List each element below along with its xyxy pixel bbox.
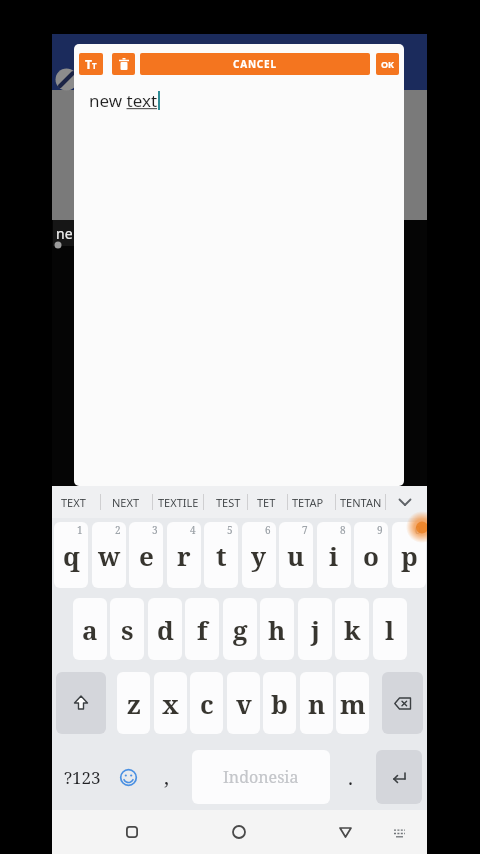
staticText: g [233,612,248,647]
button[interactable] [331,820,359,844]
button[interactable]: TETAP [278,486,338,518]
staticText: j [311,612,320,647]
button[interactable]: m [336,672,369,734]
button[interactable] [388,486,422,518]
button[interactable]: h [260,598,294,660]
button[interactable] [118,820,146,844]
staticText: new text [89,89,158,112]
staticText: 5 [227,523,233,537]
staticText: r [177,538,191,573]
staticText: TEXT [61,495,86,510]
staticText: 0 [415,523,421,537]
button[interactable]: i [317,522,351,588]
staticText: 9 [377,523,383,537]
staticText: TEST [216,495,241,510]
staticText: . [348,764,353,791]
button[interactable]: j [298,598,332,660]
button[interactable]: . [336,750,364,804]
staticText: CANCEL [233,57,277,71]
button[interactable]: t [204,522,238,588]
button[interactable] [386,822,412,844]
button[interactable]: x [154,672,187,734]
staticText: i [329,538,339,573]
staticText: n [308,686,326,721]
staticText: 2 [115,523,121,537]
staticText: t [216,538,227,573]
button[interactable] [112,750,144,804]
staticText: TETAP [292,495,324,510]
staticText: ?123 [64,766,101,789]
button[interactable]: w [92,522,126,588]
staticText: Indonesia [223,766,299,788]
button[interactable]: TEST [198,486,258,518]
staticText: 8 [340,523,346,537]
staticText: e [139,538,154,573]
button[interactable]: a [73,598,107,660]
staticText: s [121,612,134,647]
button[interactable]: r [167,522,201,588]
staticText: TENTAN [340,495,382,510]
button[interactable]: k [335,598,369,660]
button[interactable] [225,820,253,844]
staticText: m [340,686,366,721]
button[interactable]: OK [376,53,399,75]
button[interactable]: CANCEL [140,53,370,75]
button[interactable]: v [227,672,260,734]
staticText: 7 [302,523,308,537]
button[interactable]: l [373,598,407,660]
button[interactable]: TENTAN [331,486,391,518]
staticText: TET [257,495,276,510]
staticText: p [401,538,418,573]
button[interactable]: f [185,598,219,660]
staticText: 4 [190,523,196,537]
staticText: , [164,764,169,791]
staticText: 3 [152,523,158,537]
button[interactable]: TET [236,486,296,518]
button[interactable]: n [300,672,333,734]
staticText: a [82,612,98,647]
button[interactable]: TEXTILE [148,486,208,518]
staticText: w [98,538,121,573]
button[interactable]: y [242,522,276,588]
button[interactable]: ?123 [56,750,108,804]
button[interactable]: , [150,750,182,804]
button[interactable]: z [117,672,150,734]
button[interactable]: q [54,522,88,588]
staticText: c [200,686,214,721]
staticText: OK [381,58,395,70]
staticText: ne [56,224,73,243]
staticText: l [385,612,395,647]
staticText: 1 [77,523,83,537]
button[interactable] [56,672,106,734]
staticText: u [287,538,305,573]
button[interactable]: p [392,522,426,588]
staticText: z [127,686,141,721]
staticText: d [157,612,174,647]
button[interactable]: d [148,598,182,660]
button[interactable]: g [223,598,257,660]
staticText: y [251,538,267,573]
button[interactable]: u [279,522,313,588]
button[interactable]: TT [79,53,103,75]
staticText: TEXTILE [158,495,199,510]
staticText: 6 [265,523,271,537]
staticText: q [63,538,80,573]
staticText: v [236,686,252,721]
staticText: NEXT [112,495,140,510]
button[interactable]: e [129,522,163,588]
button[interactable]: c [190,672,223,734]
button[interactable]: s [110,598,144,660]
button[interactable]: b [263,672,296,734]
staticText: TT [85,56,97,72]
button[interactable] [376,750,422,804]
staticText: h [268,612,286,647]
button[interactable]: Indonesia [192,750,330,804]
button[interactable] [382,672,423,734]
button[interactable] [112,53,135,75]
button[interactable]: NEXT [96,486,156,518]
staticText: k [344,612,361,647]
button[interactable]: o [354,522,388,588]
staticText: o [363,538,379,573]
staticText: x [162,686,179,721]
button[interactable]: TEXT [52,486,103,518]
